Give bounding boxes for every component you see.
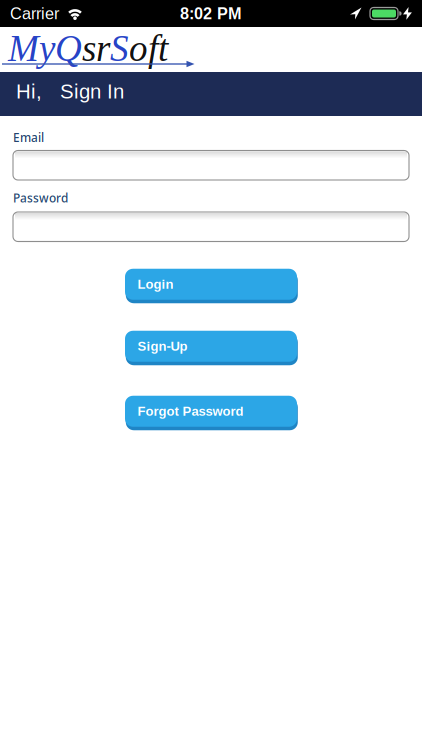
button[interactable]: Login: [124, 267, 298, 301]
staticText: Sign-Up: [137, 339, 187, 354]
staticText: Password: [13, 190, 68, 206]
staticText: oft: [129, 28, 168, 69]
staticText: S: [110, 28, 129, 69]
button[interactable]: Forgot Password: [124, 394, 298, 428]
staticText: Q: [55, 28, 82, 69]
button[interactable]: Sign-Up: [124, 329, 298, 363]
staticText: Hi, Sign In: [16, 80, 124, 103]
staticText: 8:02 PM: [180, 4, 242, 23]
staticText: Login: [137, 277, 173, 292]
staticText: Forgot Password: [137, 404, 243, 419]
staticText: My: [8, 28, 55, 69]
staticText: Carrier: [10, 4, 59, 23]
staticText: Email: [13, 129, 44, 145]
staticText: sr: [82, 28, 110, 69]
